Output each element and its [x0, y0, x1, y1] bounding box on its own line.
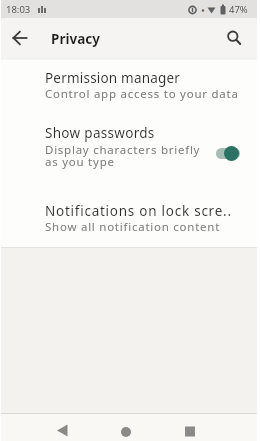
- button[interactable]: [2, 20, 38, 56]
- button[interactable]: [0, 61, 260, 113]
- staticText: Permission manager: [45, 69, 181, 87]
- button[interactable]: [0, 113, 260, 187]
- button[interactable]: [0, 187, 260, 247]
- button[interactable]: [55, 424, 71, 440]
- staticText: Control app access to your data: [45, 86, 239, 102]
- button[interactable]: [216, 20, 252, 56]
- staticText: 18:03: [6, 3, 31, 16]
- staticText: Show passwords: [45, 124, 155, 142]
- staticText: Show all notification content: [45, 219, 221, 235]
- staticText: 47%: [229, 3, 248, 16]
- button[interactable]: [184, 426, 196, 438]
- staticText: Display characters briefly as you type: [45, 142, 201, 170]
- staticText: Privacy: [51, 30, 100, 48]
- button[interactable]: [120, 427, 132, 439]
- staticText: Notifications on lock scre..: [45, 202, 232, 220]
